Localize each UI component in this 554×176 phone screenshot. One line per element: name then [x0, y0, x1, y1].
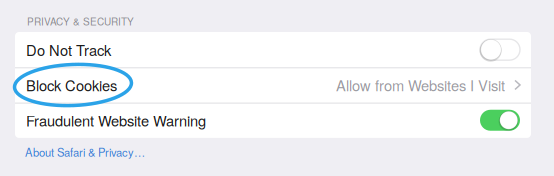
staticText: PRIVACY & SECURITY	[27, 14, 134, 28]
staticText: Block Cookies	[26, 74, 117, 95]
staticText: Fraudulent Website Warning	[26, 110, 206, 131]
staticText: Do Not Track	[26, 39, 111, 60]
staticText: Allow from Websites I Visit	[336, 74, 505, 95]
button[interactable]: About Safari & Privacy…	[21, 141, 149, 163]
staticText: About Safari & Privacy…	[25, 144, 145, 160]
button[interactable]: Block Cookies	[15, 67, 531, 103]
button[interactable]: Fraudulent Website Warning	[15, 103, 531, 138]
button[interactable]: Do Not Track	[15, 32, 531, 67]
